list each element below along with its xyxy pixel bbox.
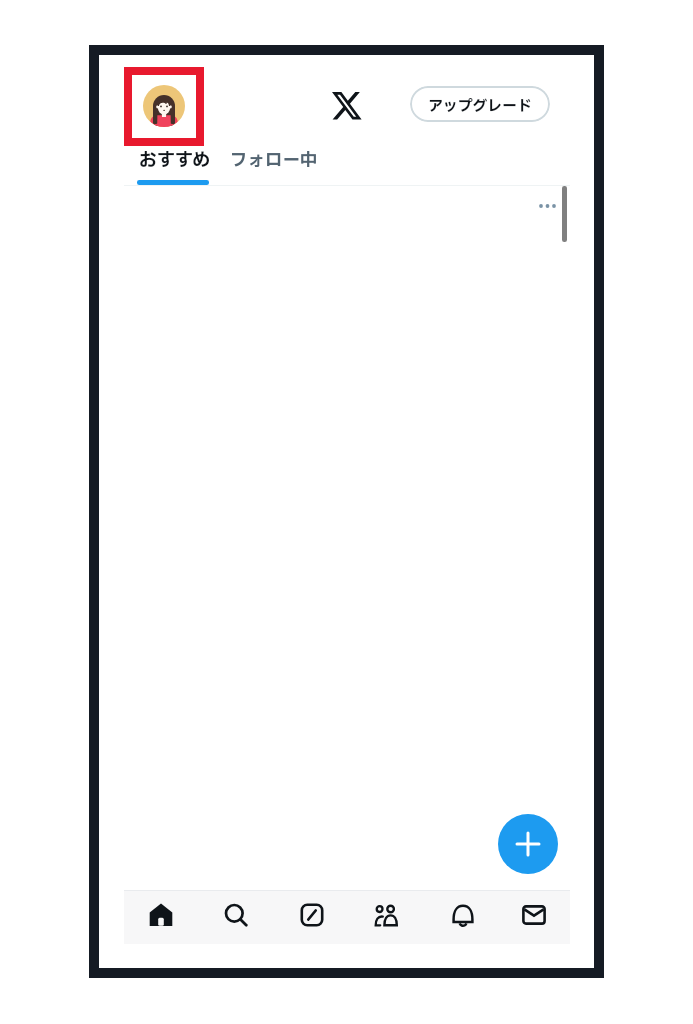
- button[interactable]: [439, 889, 487, 940]
- staticText: おすすめ: [139, 147, 211, 174]
- button[interactable]: [212, 889, 260, 940]
- staticText: フォロー中: [230, 147, 318, 173]
- button[interactable]: アップグレード: [410, 86, 550, 122]
- button[interactable]: おすすめ: [139, 147, 211, 174]
- button[interactable]: [363, 889, 411, 940]
- button[interactable]: フォロー中: [230, 147, 318, 173]
- button[interactable]: [137, 889, 185, 940]
- button[interactable]: [288, 889, 336, 940]
- button[interactable]: [510, 889, 558, 940]
- staticText: アップグレード: [428, 95, 533, 117]
- button[interactable]: [124, 67, 204, 146]
- button[interactable]: [498, 814, 558, 874]
